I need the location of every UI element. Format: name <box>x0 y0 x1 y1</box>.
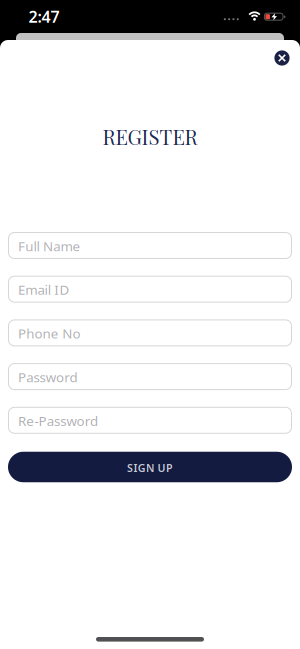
button[interactable]: SIGN UP <box>8 452 292 482</box>
button[interactable]: Full Name <box>8 232 292 259</box>
staticText: Re-Password <box>18 412 98 430</box>
button[interactable]: Password <box>8 363 292 390</box>
staticText: Full Name <box>18 237 81 255</box>
staticText: 2:47 <box>28 6 59 27</box>
staticText: SIGN UP <box>127 461 173 475</box>
staticText: Phone No <box>18 324 80 342</box>
staticText: Email ID <box>18 281 69 298</box>
button[interactable]: Email ID <box>8 276 292 303</box>
button[interactable] <box>274 50 290 66</box>
button[interactable]: Re-Password <box>8 407 292 434</box>
staticText: REGISTER <box>102 123 197 150</box>
staticText: Password <box>18 368 77 386</box>
button[interactable]: Phone No <box>8 319 292 346</box>
